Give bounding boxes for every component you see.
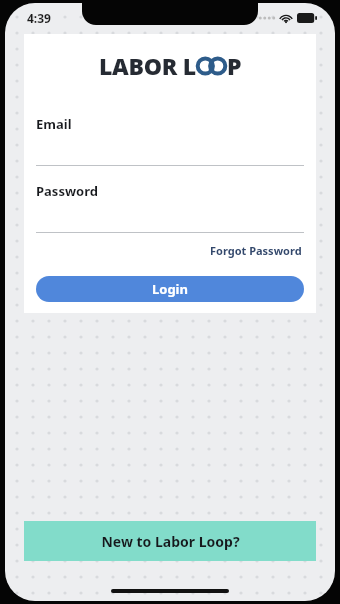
staticText: Email	[36, 115, 72, 133]
staticText: 4:39	[27, 10, 51, 26]
staticText: Password	[36, 182, 98, 200]
staticText: Login	[152, 280, 188, 298]
button[interactable]: Login	[36, 276, 304, 302]
staticText: LABOR L	[99, 50, 196, 81]
button[interactable]: Forgot Password	[208, 241, 304, 260]
staticText: New to Labor Loop?	[101, 532, 240, 551]
staticText: P	[227, 50, 242, 81]
button[interactable]: New to Labor Loop?	[24, 521, 316, 561]
